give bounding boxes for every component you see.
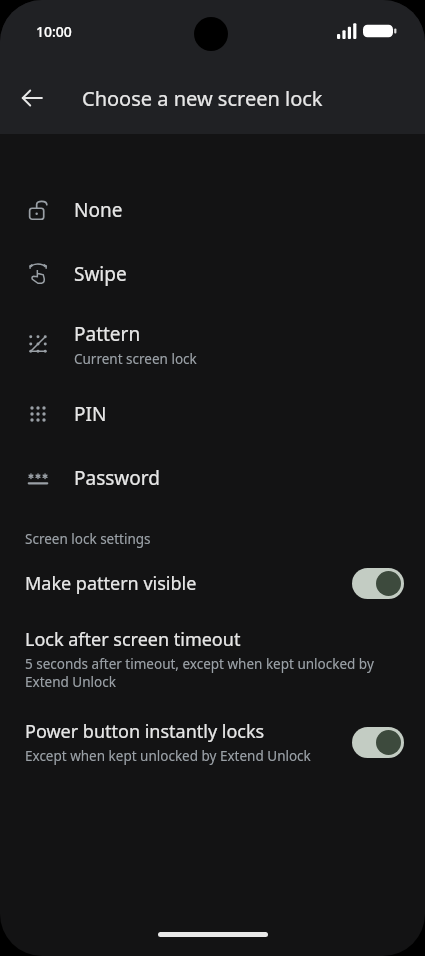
- button[interactable]: Make pattern visible toggle: [352, 568, 404, 599]
- staticText: Pattern: [74, 321, 141, 347]
- button[interactable]: Lock after screen timeout: [0, 613, 425, 705]
- staticText: None: [74, 197, 123, 223]
- button[interactable]: Make pattern visible: [0, 554, 425, 613]
- staticText: Swipe: [74, 261, 127, 287]
- staticText: Screen lock settings: [25, 530, 151, 548]
- staticText: Current screen lock: [74, 350, 197, 368]
- button[interactable]: PIN: [0, 382, 425, 446]
- staticText: 5 seconds after timeout, except when kep…: [25, 655, 392, 691]
- button[interactable]: Power button instantly locks toggle: [352, 727, 404, 758]
- staticText: 10:00: [36, 22, 72, 41]
- staticText: Password: [74, 465, 160, 491]
- button[interactable]: Power button instantly locks: [0, 705, 425, 779]
- button[interactable]: Swipe: [0, 242, 425, 306]
- staticText: Lock after screen timeout: [25, 627, 241, 652]
- staticText: PIN: [74, 401, 107, 427]
- staticText: Power button instantly locks: [25, 719, 265, 744]
- button[interactable]: Pattern: [0, 306, 425, 382]
- staticText: Except when kept unlocked by Extend Unlo…: [25, 747, 311, 765]
- button[interactable]: None: [0, 178, 425, 242]
- button[interactable]: Back: [8, 74, 56, 122]
- button[interactable]: Password: [0, 446, 425, 510]
- staticText: Make pattern visible: [25, 571, 197, 596]
- staticText: Choose a new screen lock: [82, 85, 323, 112]
